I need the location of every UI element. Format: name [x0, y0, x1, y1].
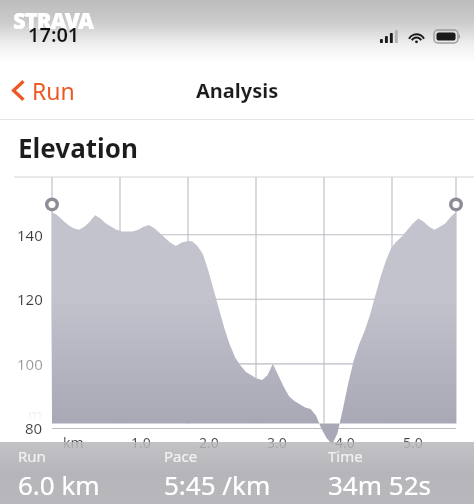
staticText: Time: [328, 446, 363, 466]
other: Back: [12, 80, 25, 101]
staticText: Run: [32, 75, 75, 106]
button[interactable]: Back: [0, 68, 91, 113]
staticText: Pace: [164, 446, 198, 466]
staticText: Elevation: [18, 130, 138, 165]
staticText: STRAVA: [13, 5, 94, 35]
staticText: Analysis: [196, 77, 279, 104]
staticText: 17:01: [28, 21, 80, 48]
button[interactable]: Run: [0, 442, 158, 504]
staticText: 6.0 km: [18, 467, 100, 502]
button[interactable]: Time: [316, 442, 474, 504]
staticText: Run: [18, 446, 46, 466]
staticText: 5:45 /km: [164, 467, 271, 502]
button[interactable]: Pace: [158, 442, 316, 504]
staticText: 34m 52s: [328, 467, 432, 502]
